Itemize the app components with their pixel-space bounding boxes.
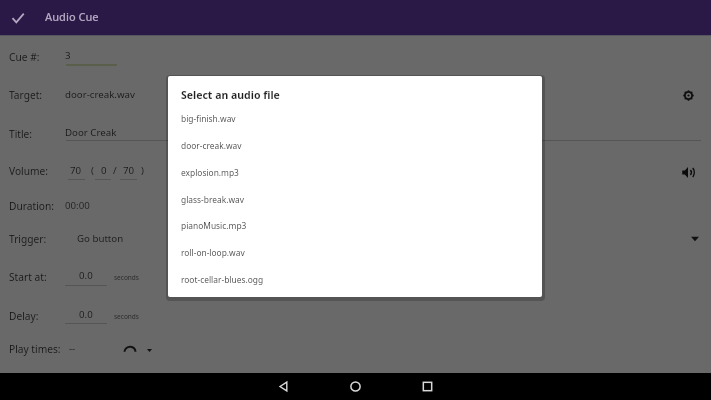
button[interactable]: big-finish.wav [168, 105, 542, 132]
button[interactable]: Target settings [677, 84, 700, 107]
button[interactable]: explosion.mp3 [168, 159, 542, 186]
staticText: 0.0 [79, 308, 93, 321]
staticText: 00:00 [65, 199, 90, 212]
staticText: Delay: [9, 309, 39, 323]
staticText: ( [91, 164, 94, 177]
button[interactable]: Play times dropdown [141, 342, 158, 359]
staticText: explosion.mp3 [181, 167, 239, 178]
staticText: 0 [101, 164, 107, 177]
staticText: Select an audio file [181, 88, 280, 102]
staticText: Cue #: [9, 50, 40, 64]
button[interactable]: pianoMusic.mp3 [168, 212, 542, 239]
staticText: root-cellar-blues.ogg [181, 274, 264, 285]
staticText: 3 [65, 49, 71, 62]
button[interactable]: Volume [676, 160, 701, 185]
staticText: seconds [114, 273, 139, 282]
staticText: glass-break.wav [181, 194, 244, 205]
staticText: 70 [70, 164, 82, 177]
button[interactable]: Save cue [5, 5, 31, 31]
staticText: big-finish.wav [181, 113, 236, 124]
staticText: Volume: [9, 164, 48, 178]
staticText: Play times: [9, 342, 61, 356]
staticText: Title: [9, 127, 33, 141]
staticText: Duration: [9, 199, 54, 213]
button[interactable]: Recents [414, 373, 441, 400]
staticText: Trigger: [9, 232, 47, 246]
staticText: Start at: [9, 270, 47, 284]
button[interactable]: Trigger dropdown [685, 229, 705, 249]
staticText: 70 [123, 164, 135, 177]
staticText: -- [69, 342, 76, 355]
staticText: seconds [114, 312, 139, 321]
button[interactable]: Repeat [118, 339, 142, 363]
staticText: roll-on-loop.wav [181, 247, 245, 258]
staticText: Audio Cue [45, 9, 99, 24]
button[interactable]: roll-on-loop.wav [168, 239, 542, 266]
staticText: Door Creak [65, 126, 117, 139]
staticText: door-creak.wav [65, 88, 135, 101]
button[interactable]: Home [342, 373, 369, 400]
staticText: / [113, 164, 117, 177]
button[interactable]: root-cellar-blues.ogg [168, 266, 542, 293]
staticText: door-creak.wav [181, 140, 242, 151]
staticText: pianoMusic.mp3 [181, 220, 247, 231]
staticText: ) [141, 164, 144, 177]
button[interactable]: Back [270, 373, 297, 400]
staticText: Target: [9, 88, 43, 102]
staticText: 0.0 [79, 269, 93, 282]
staticText: Go button [77, 232, 124, 245]
button[interactable]: glass-break.wav [168, 186, 542, 213]
button[interactable]: door-creak.wav [168, 132, 542, 159]
